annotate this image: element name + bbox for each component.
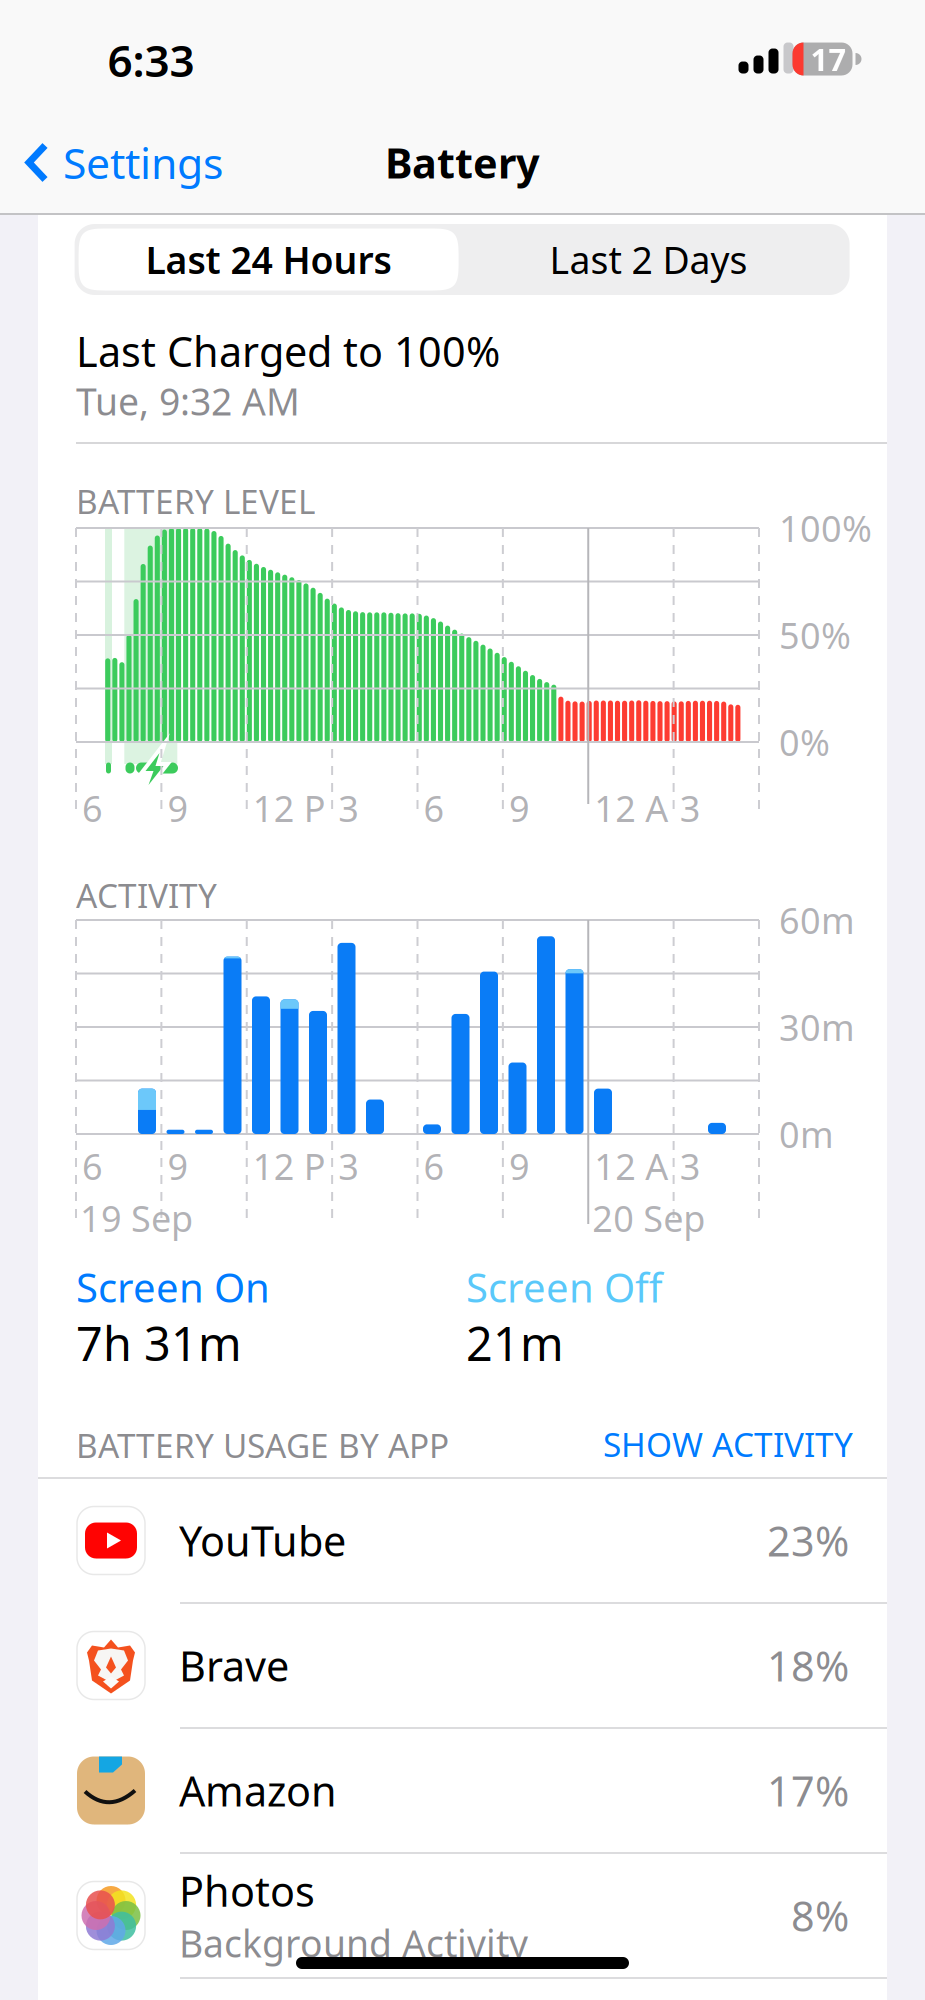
button[interactable]: YouTube — [38, 1479, 887, 1602]
staticText: 9 — [509, 784, 530, 832]
button[interactable]: SHOW ACTIVITY — [523, 1422, 853, 1466]
staticText: 100% — [779, 504, 872, 552]
staticText: 19 Sep — [80, 1194, 193, 1242]
staticText: 20 Sep — [592, 1194, 705, 1242]
staticText: Last Charged to 100% — [0, 180, 311, 250]
staticText: 3 — [338, 784, 359, 832]
staticText: Screen Off — [466, 1260, 663, 1313]
staticText: 6 — [82, 1142, 103, 1190]
staticText: SHOW ACTIVITY — [603, 1422, 853, 1466]
staticText: 3 — [680, 784, 701, 832]
button[interactable]: Amazon — [38, 1729, 887, 1852]
staticText: Screen On — [76, 1260, 270, 1313]
staticText: 3 — [680, 1142, 701, 1190]
staticText: Last Charged to 100% — [76, 324, 500, 378]
staticText: 9 — [509, 1142, 530, 1190]
staticText: 3 — [338, 1142, 359, 1190]
staticText: Battery — [385, 135, 540, 190]
staticText: 60m — [779, 896, 855, 944]
staticText: 6 — [82, 784, 103, 832]
staticText: 12 P — [253, 1142, 326, 1190]
staticText: 8% — [791, 1888, 849, 1943]
button[interactable]: Last 24 Hours — [79, 228, 459, 290]
staticText: Tue, 9:32 AM — [76, 376, 300, 426]
staticText: Amazon — [179, 1763, 337, 1818]
staticText: YouTube — [179, 1513, 346, 1568]
staticText: BATTERY LEVEL — [76, 479, 315, 523]
button[interactable]: Brave — [38, 1604, 887, 1727]
staticText: BATTERY USAGE BY APP — [76, 1423, 449, 1467]
staticText: 6 — [423, 1142, 444, 1190]
staticText: 0% — [779, 718, 830, 766]
staticText: 9 — [167, 1142, 188, 1190]
staticText: 30m — [779, 1003, 855, 1051]
button[interactable]: Photos — [38, 1854, 887, 1977]
staticText: 17 — [810, 39, 846, 79]
staticText: Photos — [179, 1863, 315, 1918]
staticText: 6 — [423, 784, 444, 832]
staticText: Last 24 Hours — [146, 235, 392, 284]
staticText: Background Activity — [179, 1918, 528, 1968]
staticText: 21m — [466, 1312, 564, 1374]
staticText: 17% — [767, 1763, 849, 1818]
staticText: 12 P — [253, 784, 326, 832]
staticText: 12 A — [594, 784, 668, 832]
button[interactable]: Last 2 Days — [459, 228, 839, 290]
staticText: 23% — [767, 1513, 849, 1568]
staticText: 0m — [779, 1110, 834, 1158]
staticText: 6:33 — [107, 31, 194, 89]
staticText: ACTIVITY — [76, 873, 217, 917]
staticText: 12 A — [594, 1142, 668, 1190]
staticText: Settings — [63, 134, 223, 191]
staticText: Last 2 Days — [550, 235, 748, 284]
staticText: 9 — [167, 784, 188, 832]
staticText: 50% — [779, 611, 851, 659]
button[interactable]: Settings — [0, 110, 237, 215]
staticText: 18% — [767, 1638, 849, 1693]
staticText: 7h 31m — [76, 1312, 242, 1374]
staticText: Brave — [179, 1638, 289, 1693]
